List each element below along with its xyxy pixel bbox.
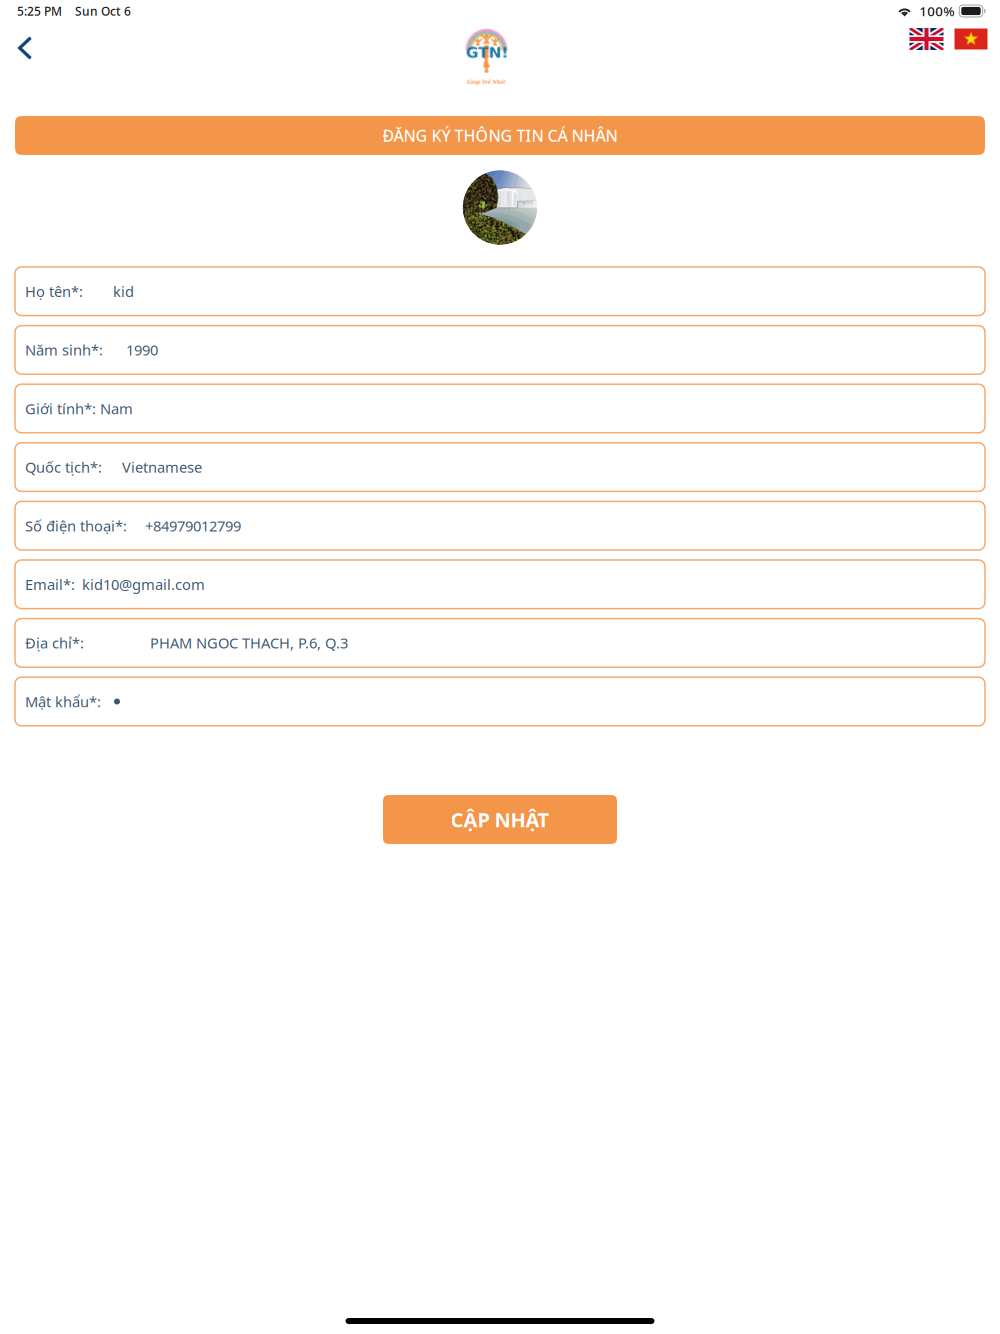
staticText: Sun Oct 6 (75, 3, 131, 19)
staticText: kid (113, 282, 134, 301)
staticText: Giới tính*: (25, 399, 96, 418)
staticText: Mật khẩu*: (25, 692, 101, 711)
button[interactable]: English (909, 28, 943, 50)
image (954, 28, 987, 49)
staticText: 1990 (126, 340, 158, 360)
staticText: 5:25 PM (17, 3, 62, 19)
staticText: ĐĂNG KÝ THÔNG TIN CÁ NHÂN (382, 125, 617, 146)
button[interactable]: Tiếng Việt (954, 28, 987, 49)
staticText: Email*: (25, 575, 75, 594)
button[interactable]: Năm sinh*: (15, 326, 985, 374)
staticText: Quốc tịch*: (25, 457, 102, 477)
button[interactable]: Họ tên*: (15, 267, 985, 316)
button[interactable]: Email*: (15, 560, 985, 609)
staticText: Số điện thoại*: (25, 516, 127, 535)
staticText: Nam (96, 399, 133, 418)
staticText: CẬP NHẬT (450, 806, 549, 833)
staticText: kid10@gmail.com (82, 575, 205, 594)
button[interactable]: Giới tính*: (15, 384, 985, 433)
button[interactable]: Quốc tịch*: (15, 443, 985, 491)
staticText: Năm sinh*: (25, 340, 103, 360)
button[interactable]: CẬP NHẬT (383, 795, 617, 844)
image (909, 28, 943, 50)
button[interactable]: Số điện thoại*: (15, 501, 985, 550)
staticText: Họ tên*: (25, 282, 83, 301)
button[interactable]: Back (0, 26, 48, 70)
button[interactable]: Change profile photo (462, 170, 537, 245)
staticText: 100% (919, 2, 954, 20)
button[interactable]: Địa chỉ*: (15, 619, 985, 667)
button[interactable]: Mật khẩu*: (15, 677, 985, 726)
image (465, 28, 507, 85)
staticText: +84979012799 (145, 516, 241, 535)
image (462, 170, 537, 245)
staticText: Địa chỉ*: (25, 633, 84, 653)
staticText: PHAM NGOC THACH, P.6, Q.3 (150, 633, 348, 653)
staticText: Vietnamese (122, 457, 202, 477)
